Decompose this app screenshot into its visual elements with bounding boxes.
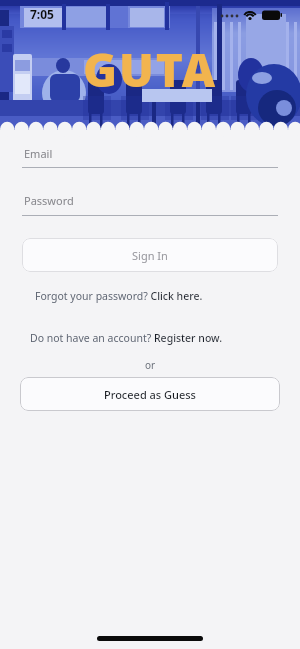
staticText: 7:05 bbox=[30, 6, 54, 22]
button[interactable]: Forgot your password? Click here. bbox=[35, 289, 203, 303]
button[interactable]: Proceed as Guess bbox=[20, 377, 280, 411]
staticText: GUTA bbox=[0, 38, 300, 101]
staticText: or bbox=[0, 358, 300, 372]
staticText: Do not have an account? Register now. bbox=[30, 331, 222, 345]
staticText: Proceed as Guess bbox=[104, 387, 196, 402]
staticText: Forgot your password? Click here. bbox=[35, 289, 203, 303]
staticText: Password bbox=[24, 193, 74, 208]
button[interactable]: Password bbox=[22, 188, 278, 216]
button[interactable]: Do not have an account? Register now. bbox=[30, 331, 222, 345]
staticText: Email bbox=[24, 146, 53, 161]
button[interactable]: Sign In bbox=[22, 238, 278, 272]
button[interactable]: Email bbox=[22, 140, 278, 168]
staticText: Sign In bbox=[132, 248, 168, 263]
